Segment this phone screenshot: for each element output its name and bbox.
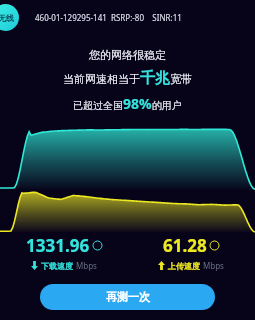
staticText: 1331.96 bbox=[26, 234, 90, 257]
staticText: 已超过全国98%的用户 bbox=[73, 94, 182, 113]
staticText: 当前网速相当于千兆宽带 bbox=[63, 69, 192, 88]
staticText: 下载速度 bbox=[41, 261, 73, 271]
staticText: 上传速度 bbox=[168, 261, 200, 271]
other: 说明 bbox=[93, 241, 102, 250]
staticText: 再测一次 bbox=[106, 290, 150, 304]
staticText: 61.28 bbox=[163, 234, 207, 257]
staticText: Mbps bbox=[203, 260, 224, 271]
staticText: 无线 bbox=[0, 13, 14, 23]
staticText: Mbps bbox=[76, 260, 97, 271]
other: 说明 bbox=[210, 241, 219, 250]
button[interactable]: 无线 bbox=[0, 4, 19, 31]
staticText: 您的网络很稳定 bbox=[89, 48, 166, 62]
button[interactable]: 61.28 bbox=[127, 234, 255, 271]
button[interactable]: 再测一次 bbox=[40, 284, 215, 310]
button[interactable]: 1331.96 bbox=[0, 234, 127, 271]
staticText: 460-01-129295-141 RSRP:-80 SINR:11 bbox=[35, 12, 182, 23]
